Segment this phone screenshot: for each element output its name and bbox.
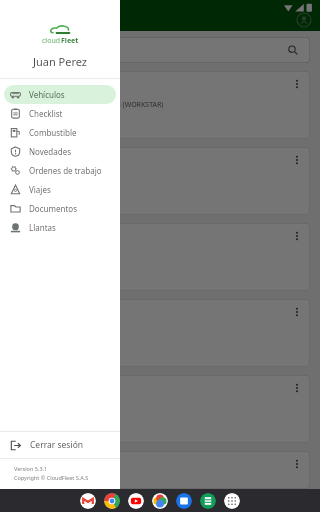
staticText: INTERNATIONAL 7600 SBA 6X4 (WORKSTAR) — [20, 100, 164, 110]
button[interactable]: Ordenes de trabajo — [4, 161, 116, 180]
staticText: Copyright © CloudFleet S.A.S — [14, 474, 89, 481]
button[interactable]: More options — [288, 379, 306, 397]
button[interactable]: KENWORTH T800 — [10, 147, 310, 215]
button[interactable]: Combustible — [4, 123, 116, 142]
button[interactable]: More options — [288, 455, 306, 473]
button[interactable]: Photos — [152, 493, 168, 509]
staticText: Ordenes de trabajo — [29, 165, 102, 176]
button[interactable]: More options — [288, 227, 306, 245]
button[interactable]: More options — [288, 303, 306, 321]
staticText: Novedades — [29, 146, 72, 157]
button[interactable]: FREIGHTLINER M2 106 — [10, 299, 310, 367]
button[interactable]: Viajes — [4, 180, 116, 199]
button[interactable]: YouTube — [128, 493, 144, 509]
button[interactable]: INTERNATIONAL 4400 — [10, 223, 310, 291]
button[interactable]: More options — [288, 75, 306, 93]
button[interactable] — [10, 37, 310, 63]
staticText: VOLVO VNL 300 — [20, 465, 72, 475]
button[interactable]: Vehículos — [4, 85, 116, 104]
button[interactable]: Checklist — [4, 104, 116, 123]
staticText: Llantas — [29, 222, 56, 233]
staticText: Version 5.3.1 — [14, 465, 48, 472]
button[interactable]: Messages — [176, 493, 192, 509]
staticText: Documentos — [29, 203, 77, 214]
button[interactable]: Cerrar sesión — [0, 432, 120, 458]
button[interactable]: Chrome — [104, 493, 120, 509]
staticText: cloud — [42, 36, 61, 46]
staticText: Checklist — [29, 108, 63, 119]
staticText: Fleet — [61, 36, 79, 46]
button[interactable]: Account — [296, 12, 312, 28]
staticText: Viajes — [29, 184, 51, 195]
button[interactable]: INTERNATIONAL 7600 — [10, 375, 310, 443]
button[interactable]: Novedades — [4, 142, 116, 161]
staticText: Vehículos — [29, 89, 65, 100]
button[interactable]: Documentos — [4, 199, 116, 218]
staticText: Cerrar sesión — [30, 439, 84, 451]
button[interactable]: Sheets — [200, 493, 216, 509]
staticText: Juan Perez — [0, 54, 120, 69]
button[interactable]: Llantas — [4, 218, 116, 237]
button[interactable]: INTERNATIONAL 7600 SBA 6X4 (WORKSTAR) — [10, 71, 310, 139]
button[interactable]: More options — [288, 151, 306, 169]
staticText: Combustible — [29, 127, 77, 138]
button[interactable]: VOLVO VNL 300 — [10, 451, 310, 489]
button[interactable]: All apps — [224, 493, 240, 509]
button[interactable]: Gmail — [80, 493, 96, 509]
